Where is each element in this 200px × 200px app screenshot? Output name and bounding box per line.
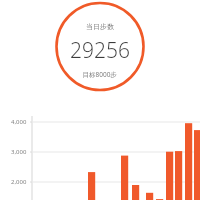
button[interactable]: Today's steps 29256, goal 8000 steps: [0, 0, 200, 200]
